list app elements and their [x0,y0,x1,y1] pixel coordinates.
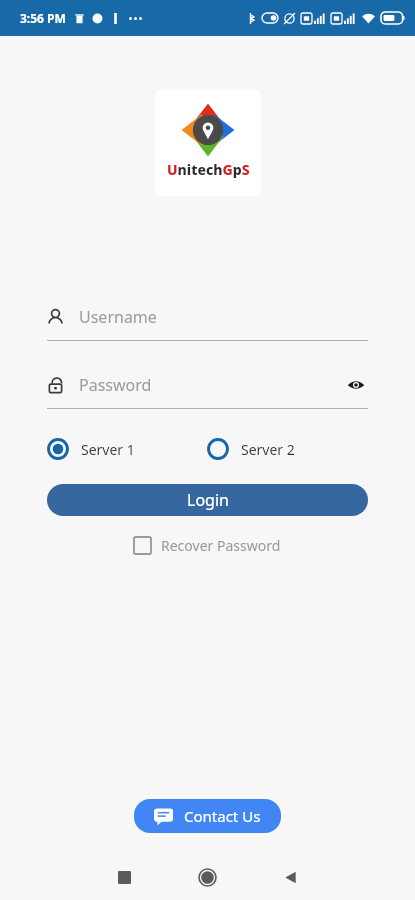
staticText: Server 1 [81,440,135,459]
button[interactable]: Recent apps [83,855,166,900]
staticText: Username [79,306,157,328]
button[interactable]: Server 1 [47,438,207,460]
button[interactable]: Server 2 [207,438,368,460]
staticText: Contact Us [184,806,261,826]
button[interactable]: Recover Password [128,530,287,561]
staticText: 3:56 PM [20,10,66,26]
button[interactable]: Show password [344,373,368,397]
staticText: Login [187,489,229,511]
staticText: UnitechGpS [167,160,250,179]
button[interactable]: Back [249,855,332,900]
button[interactable]: Login [47,484,368,516]
button[interactable]: Username [47,300,368,341]
staticText: Recover Password [161,536,281,555]
button[interactable]: Home [166,855,249,900]
staticText: Server 2 [241,440,295,459]
staticText: Password [79,374,152,396]
button[interactable]: Password [47,368,368,409]
button[interactable]: Contact Us [134,799,281,833]
